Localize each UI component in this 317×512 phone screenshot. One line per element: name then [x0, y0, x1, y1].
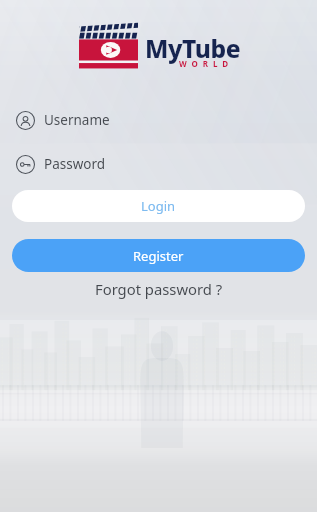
button[interactable]: Register	[12, 239, 305, 272]
other: Password	[16, 155, 35, 174]
staticText: Password	[44, 155, 106, 173]
staticText: Username	[44, 111, 110, 129]
button[interactable]: Forgot password ?	[0, 277, 317, 301]
staticText: Login	[141, 197, 176, 215]
staticText: Forgot password ?	[95, 279, 223, 299]
button[interactable]: Username	[0, 98, 317, 142]
staticText: W O R L D	[179, 58, 230, 69]
button[interactable]: Password	[0, 142, 317, 186]
button[interactable]: Login	[12, 190, 305, 222]
other: Username	[16, 111, 35, 130]
staticText: Register	[133, 247, 184, 265]
staticText: MyTube	[145, 32, 241, 65]
